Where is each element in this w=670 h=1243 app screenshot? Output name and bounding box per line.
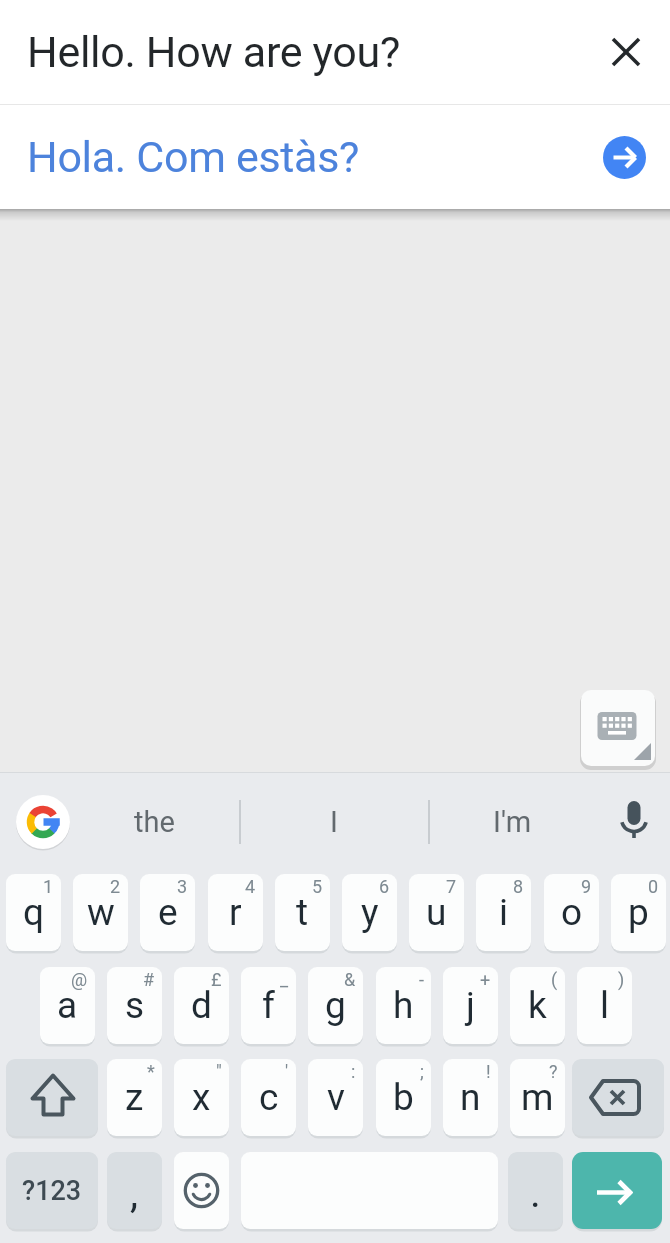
button[interactable] (572, 1152, 662, 1229)
button[interactable]: o (544, 874, 599, 951)
staticText: ; (420, 1061, 424, 1082)
button[interactable]: k (510, 967, 565, 1044)
staticText: the (134, 805, 175, 839)
staticText: £ (211, 969, 222, 990)
staticText: ) (618, 969, 625, 990)
staticText: ! (486, 1061, 491, 1082)
staticText: a (57, 984, 78, 1027)
staticText: * (147, 1061, 155, 1082)
staticText: m (521, 1076, 554, 1119)
staticText: h (393, 984, 414, 1027)
staticText: I'm (493, 805, 532, 839)
staticText: 2 (110, 876, 121, 897)
staticText: 4 (245, 876, 256, 897)
button[interactable]: . (508, 1152, 563, 1229)
staticText: 6 (379, 876, 390, 897)
staticText: b (393, 1076, 414, 1119)
button[interactable] (572, 1059, 664, 1136)
button[interactable]: m (510, 1059, 565, 1136)
button[interactable] (581, 690, 655, 766)
staticText: f (262, 984, 275, 1027)
button[interactable]: x (174, 1059, 229, 1136)
staticText: u (426, 891, 447, 934)
button[interactable]: s (107, 967, 162, 1044)
staticText: 7 (446, 876, 457, 897)
button[interactable]: l (577, 967, 632, 1044)
staticText: 9 (581, 876, 592, 897)
staticText: l (600, 984, 609, 1027)
staticText: t (296, 891, 309, 934)
button[interactable]: c (241, 1059, 296, 1136)
staticText: ?123 (22, 1175, 82, 1207)
staticText: @ (71, 969, 88, 990)
staticText: & (344, 969, 356, 990)
staticText: ? (549, 1061, 558, 1082)
staticText: c (259, 1076, 279, 1119)
button[interactable]: h (376, 967, 431, 1044)
staticText: 5 (312, 876, 323, 897)
button[interactable] (16, 795, 70, 849)
button[interactable]: g (308, 967, 363, 1044)
staticText: v (327, 1076, 345, 1119)
button[interactable]: , (107, 1152, 162, 1229)
staticText: # (143, 969, 155, 990)
button[interactable] (603, 136, 646, 179)
button[interactable]: w (73, 874, 128, 951)
button[interactable]: v (308, 1059, 363, 1136)
button[interactable]: e (140, 874, 195, 951)
staticText: r (229, 891, 242, 934)
button[interactable] (610, 796, 658, 844)
button[interactable]: I (241, 800, 427, 844)
staticText: 8 (513, 876, 524, 897)
staticText: _ (280, 969, 289, 990)
staticText: , (130, 1169, 139, 1217)
staticText: . (530, 1169, 541, 1217)
staticText: ' (285, 1061, 289, 1082)
button[interactable]: u (409, 874, 464, 951)
staticText: s (125, 984, 145, 1027)
staticText: w (87, 891, 115, 934)
staticText: g (325, 984, 346, 1027)
staticText: y (361, 891, 379, 934)
button[interactable] (604, 30, 648, 74)
staticText: e (158, 891, 178, 934)
button[interactable]: i (476, 874, 531, 951)
button[interactable]: j (443, 967, 498, 1044)
staticText: - (419, 969, 424, 990)
staticText: q (23, 891, 45, 934)
staticText: ( (551, 969, 558, 990)
staticText: " (216, 1061, 222, 1082)
staticText: i (499, 891, 508, 934)
staticText: d (191, 984, 212, 1027)
button[interactable]: y (342, 874, 397, 951)
staticText: p (628, 891, 649, 934)
button[interactable]: I'm (430, 800, 595, 844)
button[interactable] (174, 1152, 229, 1229)
button[interactable]: the (72, 800, 237, 844)
button[interactable]: a (40, 967, 95, 1044)
staticText: 3 (177, 876, 188, 897)
button[interactable]: d (174, 967, 229, 1044)
staticText: + (480, 969, 491, 990)
button[interactable]: n (443, 1059, 498, 1136)
button[interactable]: p (611, 874, 666, 951)
button[interactable] (6, 1059, 98, 1136)
staticText: Hello. How are you? (27, 27, 401, 77)
staticText: n (460, 1076, 481, 1119)
button[interactable]: q (6, 874, 61, 951)
button[interactable]: t (275, 874, 330, 951)
staticText: x (192, 1076, 211, 1119)
staticText: I (330, 805, 338, 839)
staticText: : (351, 1061, 356, 1082)
button[interactable]: r (208, 874, 263, 951)
button[interactable]: b (376, 1059, 431, 1136)
staticText: 1 (43, 876, 54, 897)
staticText: j (466, 984, 475, 1027)
button[interactable]: f (241, 967, 296, 1044)
staticText: o (561, 891, 583, 934)
button[interactable]: z (107, 1059, 162, 1136)
staticText: Hola. Com estàs? (27, 132, 360, 182)
button[interactable]: ?123 (6, 1152, 98, 1229)
staticText: z (125, 1076, 144, 1119)
